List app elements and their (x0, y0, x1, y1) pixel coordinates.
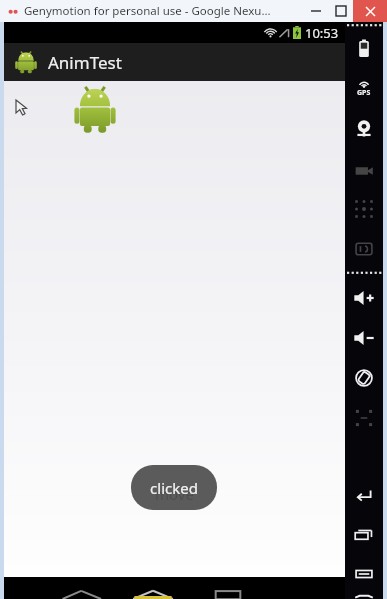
button[interactable]: Rotate screen (345, 358, 383, 398)
button[interactable]: Maximize (328, 0, 353, 22)
button[interactable]: Home (122, 590, 184, 599)
button[interactable]: Volume up (345, 278, 383, 318)
button[interactable]: Home (345, 594, 383, 599)
button[interactable]: Sensors (345, 189, 383, 229)
button[interactable]: Record video (345, 149, 383, 189)
button[interactable]: AnimTest (4, 43, 345, 81)
staticText: 10:53 (305, 24, 339, 42)
button[interactable]: Camera (345, 109, 383, 149)
staticText: clicked (150, 478, 198, 498)
button[interactable]: Volume down (345, 318, 383, 358)
button[interactable]: Minimize (303, 0, 328, 22)
button[interactable]: GPS (345, 69, 383, 109)
staticText: GPS (357, 88, 371, 98)
button[interactable]: Close (353, 0, 387, 22)
button[interactable]: Battery (345, 29, 383, 69)
button[interactable]: Recents (200, 590, 256, 599)
button[interactable]: Screenshot (345, 398, 383, 438)
button[interactable]: Recent apps (345, 514, 383, 554)
staticText: AnimTest (48, 51, 122, 74)
button[interactable]: Menu (345, 554, 383, 594)
button[interactable]: Back (345, 474, 383, 514)
button[interactable]: Identifiers (345, 229, 383, 269)
staticText: Genymotion for personal use - Google Nex… (24, 3, 271, 19)
button[interactable]: move (131, 465, 217, 510)
staticText: move (155, 484, 194, 504)
button[interactable]: Back (44, 590, 106, 599)
